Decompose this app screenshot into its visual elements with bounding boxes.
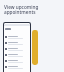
staticText: View upcoming appointments <box>4 4 39 15</box>
